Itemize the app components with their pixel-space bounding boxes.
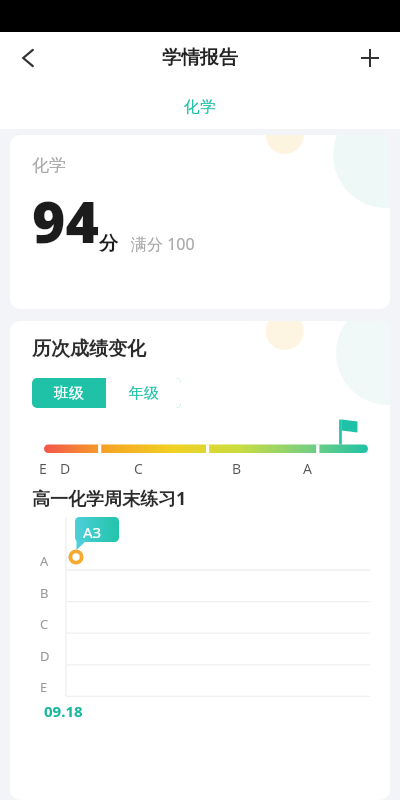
staticText: C — [40, 615, 49, 633]
staticText: A3 — [83, 522, 102, 542]
button[interactable]: 化学 — [10, 135, 390, 309]
staticText: 年级 — [129, 384, 159, 403]
button[interactable]: 班级 — [32, 378, 106, 408]
staticText: 学情报告 — [162, 46, 238, 70]
staticText: C — [134, 459, 143, 478]
staticText: 满分 100 — [131, 233, 195, 255]
staticText: A — [40, 552, 49, 570]
staticText: 94 — [32, 182, 99, 260]
staticText: 高一化学周末练习1 — [32, 486, 187, 511]
staticText: E — [39, 459, 47, 478]
staticText: 班级 — [54, 384, 84, 403]
button[interactable]: 年级 — [106, 378, 181, 408]
staticText: B — [232, 459, 242, 478]
staticText: B — [40, 584, 49, 602]
staticText: 09.18 — [44, 701, 83, 721]
button[interactable]: 化学 — [166, 89, 234, 125]
button[interactable]: Add — [348, 36, 392, 80]
staticText: 历次成绩变化 — [32, 337, 146, 361]
staticText: 化学 — [32, 155, 66, 176]
staticText: 分 — [99, 232, 118, 256]
staticText: A — [303, 459, 312, 478]
staticText: E — [40, 678, 48, 696]
staticText: D — [60, 459, 71, 478]
button[interactable]: Back — [6, 35, 52, 81]
staticText: 化学 — [184, 97, 216, 117]
staticText: D — [40, 647, 50, 665]
